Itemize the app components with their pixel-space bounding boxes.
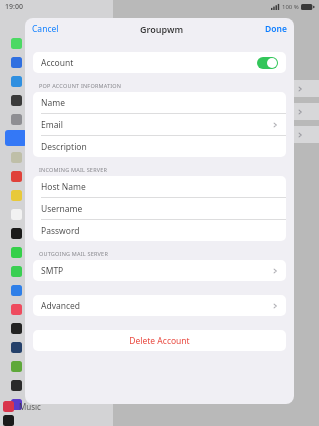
button[interactable]: Music xyxy=(3,398,113,414)
staticText: Settings xyxy=(39,16,75,28)
staticText: Delete Account xyxy=(129,335,190,347)
staticText: Password xyxy=(41,225,80,237)
staticText: Cancel xyxy=(32,23,59,35)
staticText: OUTGOING MAIL SERVER xyxy=(39,250,108,257)
button[interactable]: Back to Mail xyxy=(121,18,146,29)
button[interactable]: Cancel xyxy=(32,23,59,35)
button[interactable]: Advanced xyxy=(41,295,278,316)
staticText: INCOMING MAIL SERVER xyxy=(39,166,108,173)
button[interactable]: Email xyxy=(41,114,278,135)
staticText: Username xyxy=(41,203,83,215)
button[interactable]: Delete Account xyxy=(33,330,286,351)
staticText: SMTP xyxy=(41,265,64,277)
staticText: Name xyxy=(41,97,65,109)
button[interactable]: Host Name xyxy=(41,176,278,197)
staticText: Accounts xyxy=(200,17,241,29)
staticText: Account xyxy=(41,57,74,69)
staticText: Mail xyxy=(130,18,146,29)
button[interactable]: Done xyxy=(265,23,287,35)
button[interactable]: Description xyxy=(41,136,278,157)
button[interactable]: Username xyxy=(41,198,278,219)
staticText: Email xyxy=(41,119,63,131)
staticText: 19:00 xyxy=(5,2,23,12)
staticText: POP ACCOUNT INFORMATION xyxy=(39,82,122,89)
staticText: Advanced xyxy=(41,300,81,312)
staticText: Done xyxy=(265,23,287,35)
staticText: Groupwm xyxy=(140,23,184,35)
staticText: Description xyxy=(41,141,87,153)
staticText: Host Name xyxy=(41,181,86,193)
staticText: 100 % xyxy=(282,3,299,11)
button[interactable]: Password xyxy=(41,220,278,241)
staticText: Music xyxy=(19,401,41,412)
button[interactable]: Name xyxy=(41,92,278,113)
button[interactable]: SMTP xyxy=(41,260,278,281)
button[interactable]: Account xyxy=(41,52,278,73)
